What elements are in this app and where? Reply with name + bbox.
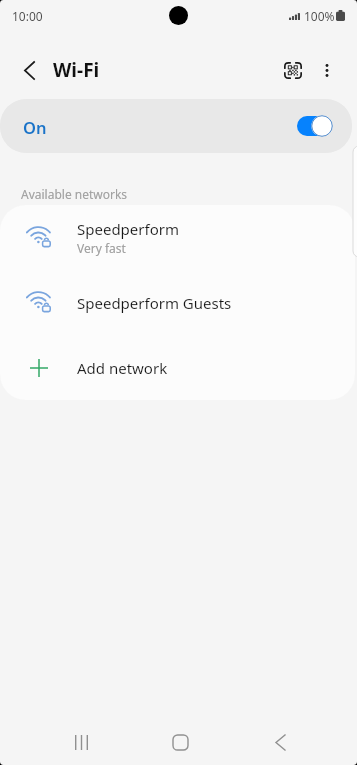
- staticText: Very fast: [77, 240, 126, 256]
- button[interactable]: Home: [149, 720, 211, 764]
- button[interactable]: Speedperform Guests: [0, 270, 355, 335]
- staticText: Speedperform: [77, 219, 179, 239]
- button[interactable]: Recents: [50, 720, 112, 764]
- staticText: 100%: [304, 8, 335, 24]
- button[interactable]: Back: [249, 720, 311, 764]
- button[interactable]: Scan QR code: [273, 50, 313, 90]
- staticText: Add network: [77, 358, 168, 378]
- staticText: Available networks: [21, 186, 128, 202]
- button[interactable]: Navigate up: [8, 49, 50, 91]
- button[interactable]: More options: [307, 50, 347, 90]
- button[interactable]: Speedperform: [0, 205, 355, 270]
- staticText: Speedperform Guests: [77, 293, 232, 313]
- staticText: On: [23, 116, 47, 138]
- button[interactable]: On: [0, 99, 352, 153]
- staticText: Wi-Fi: [53, 57, 100, 83]
- button[interactable]: Add network: [0, 335, 355, 400]
- staticText: 10:00: [12, 8, 43, 24]
